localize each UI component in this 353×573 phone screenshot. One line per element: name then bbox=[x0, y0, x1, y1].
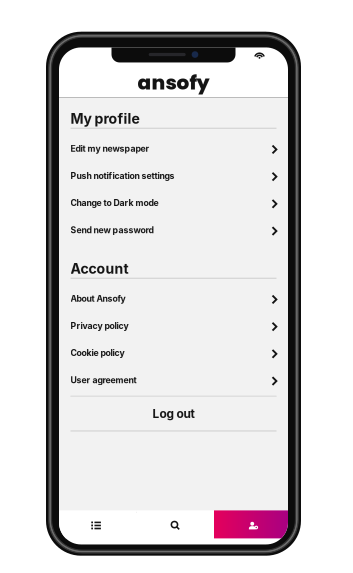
button[interactable]: Push notification settings bbox=[70, 162, 276, 189]
staticText: Edit my newspaper bbox=[70, 143, 149, 154]
button[interactable]: Send new password bbox=[70, 216, 276, 244]
button[interactable]: Log out bbox=[70, 397, 276, 430]
staticText: Privacy policy bbox=[70, 320, 128, 331]
button[interactable]: About Ansofy bbox=[70, 285, 276, 312]
staticText: About Ansofy bbox=[70, 293, 125, 304]
button[interactable]: Privacy policy bbox=[70, 312, 276, 339]
button[interactable]: Feed bbox=[59, 510, 136, 538]
button[interactable]: Search bbox=[136, 510, 214, 538]
button[interactable]: Cookie policy bbox=[70, 339, 276, 366]
button[interactable]: Edit my newspaper bbox=[70, 135, 276, 162]
staticText: User agreement bbox=[70, 375, 136, 385]
button[interactable]: User agreement bbox=[70, 366, 276, 394]
staticText: My profile bbox=[70, 110, 139, 127]
staticText: Log out bbox=[152, 406, 194, 421]
staticText: Cookie policy bbox=[70, 348, 124, 358]
button[interactable]: Profile bbox=[214, 510, 288, 538]
staticText: Push notification settings bbox=[70, 170, 174, 181]
staticText: Account bbox=[70, 260, 128, 277]
staticText: Change to Dark mode bbox=[70, 198, 158, 208]
staticText: ansofy bbox=[137, 68, 209, 96]
staticText: Send new password bbox=[70, 225, 153, 235]
button[interactable]: Change to Dark mode bbox=[70, 189, 276, 216]
